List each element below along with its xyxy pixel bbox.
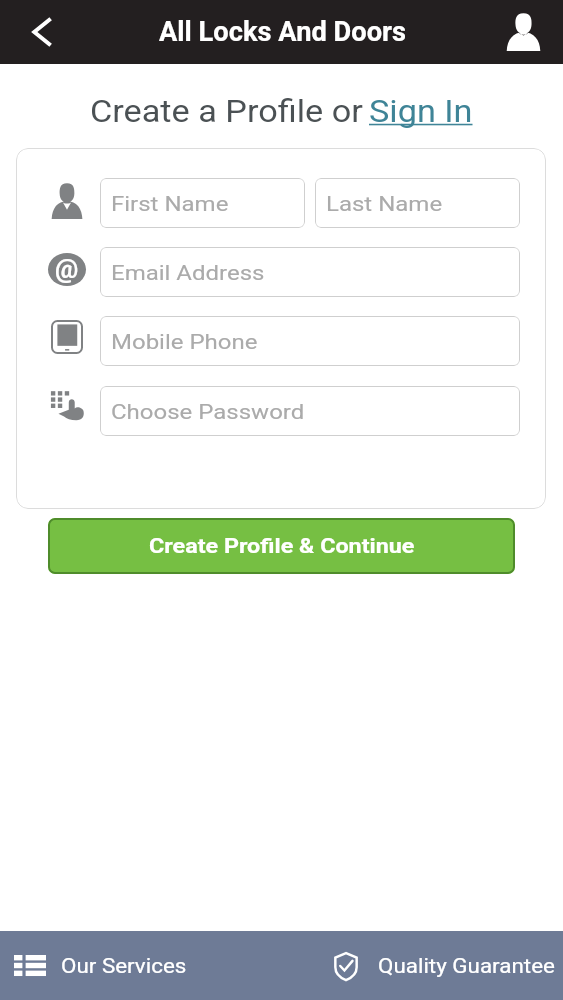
button[interactable]: Quality Guarantee (300, 931, 563, 1000)
staticText: Our Services (61, 954, 186, 977)
button[interactable]: Email Address (100, 247, 520, 297)
staticText: Last Name (326, 192, 442, 215)
staticText: @ (55, 254, 79, 284)
button[interactable]: Back (0, 0, 80, 64)
staticText: Choose Password (111, 400, 305, 423)
staticText: Quality Guarantee (378, 954, 555, 977)
staticText: Create Profile & Continue (149, 534, 415, 559)
staticText: Create a Profile or (90, 92, 363, 130)
staticText: Email Address (111, 261, 265, 284)
button[interactable]: Our Services (0, 931, 300, 1000)
button[interactable]: Create Profile & Continue (48, 518, 515, 574)
staticText: All Locks And Doors (159, 16, 406, 48)
button[interactable]: Profile (483, 0, 563, 64)
staticText: First Name (111, 192, 229, 215)
button[interactable]: First Name (100, 178, 305, 228)
staticText: Sign In (369, 92, 473, 130)
button[interactable]: Last Name (315, 178, 520, 228)
button[interactable]: Mobile Phone (100, 316, 520, 366)
button[interactable]: Sign In (369, 92, 466, 130)
button[interactable]: Choose Password (100, 386, 520, 436)
staticText: Mobile Phone (111, 330, 259, 353)
